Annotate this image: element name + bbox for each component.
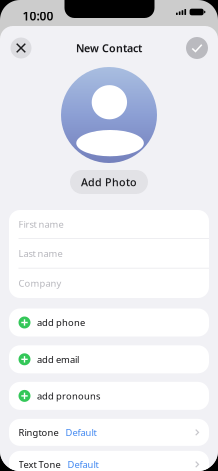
button[interactable]: add email	[9, 345, 209, 373]
button[interactable]: Ringtone	[9, 419, 209, 446]
button[interactable]: Add Photo	[70, 170, 148, 194]
button[interactable]: Company	[9, 268, 209, 298]
staticText: Default	[65, 426, 96, 439]
staticText: Add Photo	[81, 175, 137, 189]
staticText: add email	[37, 353, 79, 365]
staticText: Ringtone	[18, 426, 58, 439]
staticText: 10:00	[22, 8, 53, 24]
staticText: add pronouns	[37, 390, 100, 402]
staticText: New Contact	[76, 41, 142, 55]
staticText: First name	[18, 218, 63, 230]
staticText: Company	[18, 277, 61, 289]
button[interactable]: add pronouns	[9, 382, 209, 410]
staticText: Last name	[18, 247, 62, 260]
button[interactable]: Cancel	[10, 37, 31, 58]
button[interactable]: Done	[186, 37, 208, 59]
staticText: add phone	[37, 316, 85, 329]
staticText: Text Tone	[18, 458, 60, 471]
staticText: Default	[67, 458, 98, 471]
button[interactable]: add phone	[9, 308, 209, 336]
button[interactable]: Text Tone	[9, 451, 209, 471]
button[interactable]: Last name	[9, 239, 209, 268]
button[interactable]: First name	[9, 210, 209, 239]
